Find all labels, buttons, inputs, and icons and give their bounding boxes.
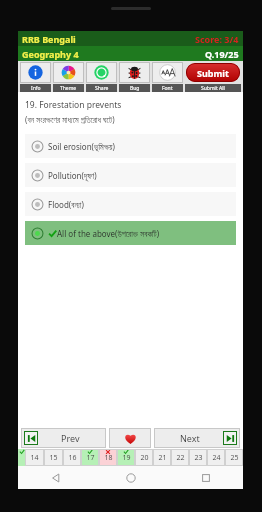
button[interactable]: Font xyxy=(152,84,183,92)
button[interactable]: 14 xyxy=(25,449,44,466)
button[interactable]: Theme xyxy=(53,62,84,83)
button[interactable]: First xyxy=(21,428,106,448)
button[interactable]: Font xyxy=(152,62,183,83)
button[interactable]: 16 xyxy=(63,449,81,466)
button[interactable]: Theme xyxy=(53,84,84,92)
staticText: Geography 4 xyxy=(22,48,79,60)
staticText: All of the above(উপরোক্ত সবকটি) xyxy=(57,228,160,239)
button[interactable]: 21 xyxy=(153,449,171,466)
staticText: Submit All xyxy=(201,85,225,92)
staticText: Info xyxy=(31,85,41,92)
staticText: Bug xyxy=(130,85,140,92)
staticText: 14 xyxy=(30,453,39,463)
other: Last xyxy=(223,431,237,445)
button[interactable]: Submit xyxy=(186,63,240,82)
staticText: 18 xyxy=(104,453,113,463)
staticText: Soil erosion(ভূমিক্ষয়) xyxy=(48,141,115,152)
staticText: Prev xyxy=(61,432,80,444)
staticText: 22 xyxy=(176,453,185,463)
button[interactable]: 15 xyxy=(44,449,63,466)
button[interactable]: 20 xyxy=(135,449,153,466)
staticText: 17 xyxy=(86,453,95,463)
button[interactable]: 19 xyxy=(117,449,135,466)
staticText: 24 xyxy=(212,453,221,463)
button[interactable]: Next xyxy=(154,428,240,448)
button[interactable]: Recents xyxy=(168,466,243,489)
staticText: Score: 3/4 xyxy=(195,33,239,45)
button[interactable]: Bug xyxy=(119,84,150,92)
button[interactable]: Info xyxy=(20,62,51,83)
staticText: 23 xyxy=(194,453,203,463)
button[interactable]: Share xyxy=(86,84,117,92)
staticText: Font xyxy=(162,85,173,92)
staticText: Share xyxy=(95,85,109,92)
button[interactable]: Submit All xyxy=(185,84,241,92)
staticText: 15 xyxy=(49,453,58,463)
button[interactable]: 22 xyxy=(171,449,189,466)
button[interactable]: Home xyxy=(93,466,168,489)
button[interactable]: 23 xyxy=(189,449,207,466)
button[interactable] xyxy=(18,449,25,466)
button[interactable]: Pollution(দূষণ) xyxy=(25,163,236,187)
staticText: Theme xyxy=(60,85,77,92)
staticText: Next xyxy=(180,432,200,444)
button[interactable]: All of the above(উপরোক্ত সবকটি) xyxy=(25,221,236,245)
button[interactable]: Back xyxy=(18,466,93,489)
staticText: Pollution(দূষণ) xyxy=(48,170,97,181)
button[interactable]: Flood(বন্যা) xyxy=(25,192,236,216)
button[interactable]: 25 xyxy=(225,449,243,466)
button[interactable]: Favorite xyxy=(109,428,151,448)
button[interactable]: Info xyxy=(20,84,51,92)
staticText: 21 xyxy=(158,453,167,463)
staticText: Submit xyxy=(197,67,229,79)
button[interactable]: Share xyxy=(86,62,117,83)
staticText: 19 xyxy=(122,453,131,463)
staticText: 16 xyxy=(68,453,77,463)
staticText: 25 xyxy=(230,453,239,463)
staticText: (বন সংরক্ষণের মাধ্যমে প্রতিরোধ ঘটে) xyxy=(25,114,115,125)
staticText: RRB Bengali xyxy=(22,33,76,45)
button[interactable]: Soil erosion(ভূমিক্ষয়) xyxy=(25,134,236,158)
staticText: 20 xyxy=(140,453,149,463)
button[interactable]: 18 xyxy=(99,449,117,466)
button[interactable]: 17 xyxy=(81,449,99,466)
other: First xyxy=(24,431,38,445)
staticText: 19. Forestation prevents xyxy=(25,99,122,111)
staticText: Q.19/25 xyxy=(205,48,239,60)
button[interactable]: Bug xyxy=(119,62,150,83)
button[interactable]: 24 xyxy=(207,449,225,466)
staticText: Flood(বন্যা) xyxy=(48,199,84,210)
